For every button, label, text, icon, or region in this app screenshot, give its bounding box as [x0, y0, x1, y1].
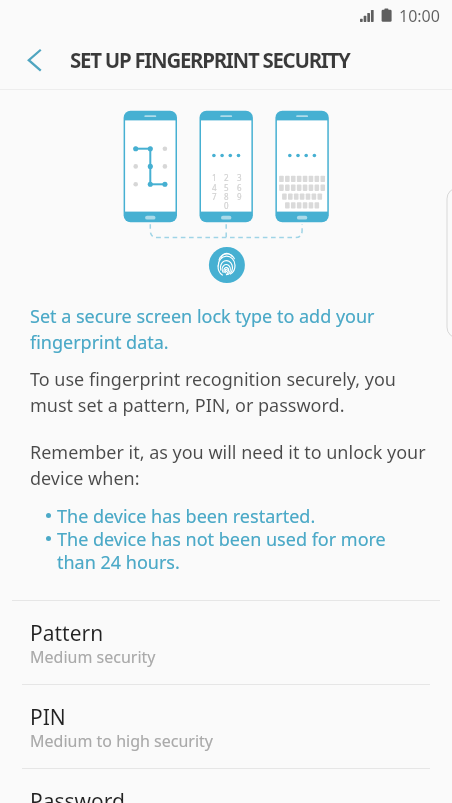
- staticText: 4: [212, 182, 217, 192]
- staticText: 9: [237, 191, 242, 201]
- staticText: Set a secure screen lock type to add you…: [30, 304, 380, 354]
- staticText: 6: [237, 182, 242, 192]
- button[interactable]: Password: [0, 769, 452, 803]
- staticText: PIN: [30, 703, 66, 732]
- button[interactable]: Pattern: [0, 601, 452, 684]
- staticText: SET UP FINGERPRINT SECURITY: [70, 46, 350, 74]
- staticText: Remember it, as you will need it to unlo…: [30, 440, 426, 490]
- staticText: 7: [212, 191, 217, 201]
- button[interactable]: Back: [11, 37, 57, 83]
- staticText: 2: [224, 172, 229, 182]
- staticText: Medium security: [30, 646, 156, 668]
- staticText: 10:00: [399, 5, 440, 27]
- staticText: Password: [30, 787, 125, 803]
- staticText: Medium to high security: [30, 730, 213, 752]
- staticText: Pattern: [30, 619, 104, 648]
- staticText: 8: [224, 191, 229, 201]
- staticText: 1: [212, 172, 217, 182]
- staticText: 0: [224, 200, 229, 210]
- staticText: 5: [224, 182, 229, 192]
- button[interactable]: PIN: [0, 685, 452, 768]
- staticText: 3: [237, 172, 242, 182]
- staticText: The device has been restarted.: [57, 504, 316, 529]
- staticText: The device has not been used for more th…: [57, 527, 389, 574]
- staticText: To use fingerprint recognition securely,…: [30, 367, 396, 417]
